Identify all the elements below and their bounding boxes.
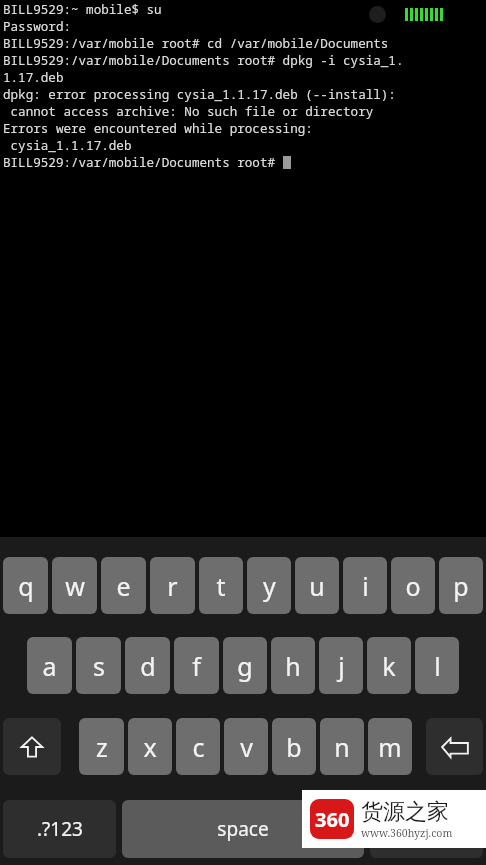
button[interactable]: r	[150, 557, 195, 614]
button[interactable]: w	[52, 557, 97, 614]
button[interactable]: d	[125, 637, 170, 694]
staticText: u	[309, 569, 325, 603]
button[interactable]: n	[320, 718, 364, 775]
button[interactable]: o	[391, 557, 435, 614]
staticText: g	[237, 649, 253, 683]
staticText: .?123	[37, 816, 83, 842]
staticText: Password:	[3, 18, 72, 35]
staticText: t	[216, 569, 226, 603]
staticText: b	[286, 730, 302, 764]
staticText: BILL9529:/var/mobile/Documents root# dpk…	[3, 52, 404, 69]
staticText: c	[192, 730, 205, 764]
button[interactable]: i	[343, 557, 387, 614]
staticText: i	[362, 569, 369, 603]
staticText: 360	[315, 806, 350, 833]
staticText: n	[334, 730, 350, 764]
staticText: m	[378, 730, 402, 764]
button[interactable]: q	[3, 557, 48, 614]
staticText: d	[140, 649, 156, 683]
staticText: j	[338, 649, 345, 683]
button[interactable]: space	[122, 800, 364, 858]
staticText: 货源之家	[361, 798, 449, 826]
button[interactable]: z	[79, 718, 124, 775]
button[interactable]: u	[295, 557, 339, 614]
button[interactable]: .?123	[3, 800, 116, 858]
button[interactable]: k	[367, 637, 411, 694]
staticText: BILL9529:/var/mobile root# cd /var/mobil…	[3, 35, 389, 52]
staticText: BILL9529:/var/mobile/Documents root#	[3, 154, 283, 171]
staticText: v	[240, 730, 253, 764]
staticText: w	[65, 569, 85, 603]
button[interactable]: h	[271, 637, 315, 694]
staticText: o	[405, 569, 421, 603]
button[interactable]: m	[368, 718, 412, 775]
button[interactable]	[370, 800, 483, 858]
button[interactable]: p	[439, 557, 483, 614]
staticText: y	[263, 569, 276, 603]
staticText: cannot access archive: No such file or d…	[3, 103, 374, 120]
staticText: k	[382, 649, 396, 683]
staticText: BILL9529:~ mobile$ su	[3, 1, 162, 18]
staticText: www.360hyzj.com	[361, 826, 453, 840]
button[interactable]: e	[101, 557, 146, 614]
staticText: dpkg: error processing cysia_1.1.17.deb …	[3, 86, 396, 103]
staticText: p	[453, 569, 469, 603]
button[interactable]: t	[199, 557, 243, 614]
staticText: 1.17.deb	[3, 69, 64, 86]
staticText: space	[217, 816, 269, 842]
staticText: l	[434, 649, 441, 683]
button[interactable]: j	[319, 637, 363, 694]
staticText: h	[285, 649, 301, 683]
button[interactable]: s	[76, 637, 121, 694]
staticText: Errors were encountered while processing…	[3, 120, 313, 137]
button[interactable]: v	[224, 718, 268, 775]
button[interactable]: l	[415, 637, 459, 694]
staticText: f	[192, 649, 201, 683]
button[interactable]: c	[176, 718, 220, 775]
button[interactable]: x	[128, 718, 172, 775]
staticText: s	[93, 649, 105, 683]
button[interactable]: g	[223, 637, 267, 694]
button[interactable]: Shift	[3, 718, 61, 775]
staticText: z	[96, 730, 108, 764]
staticText: r	[167, 569, 178, 603]
button[interactable]: Backspace	[426, 718, 483, 775]
staticText: cysia_1.1.17.deb	[3, 137, 132, 154]
staticText: q	[18, 569, 34, 603]
staticText: e	[116, 569, 131, 603]
button[interactable]: a	[27, 637, 72, 694]
button[interactable]: f	[174, 637, 219, 694]
button[interactable]: b	[272, 718, 316, 775]
button[interactable]: y	[247, 557, 291, 614]
staticText: x	[143, 730, 157, 764]
staticText: a	[42, 649, 57, 683]
